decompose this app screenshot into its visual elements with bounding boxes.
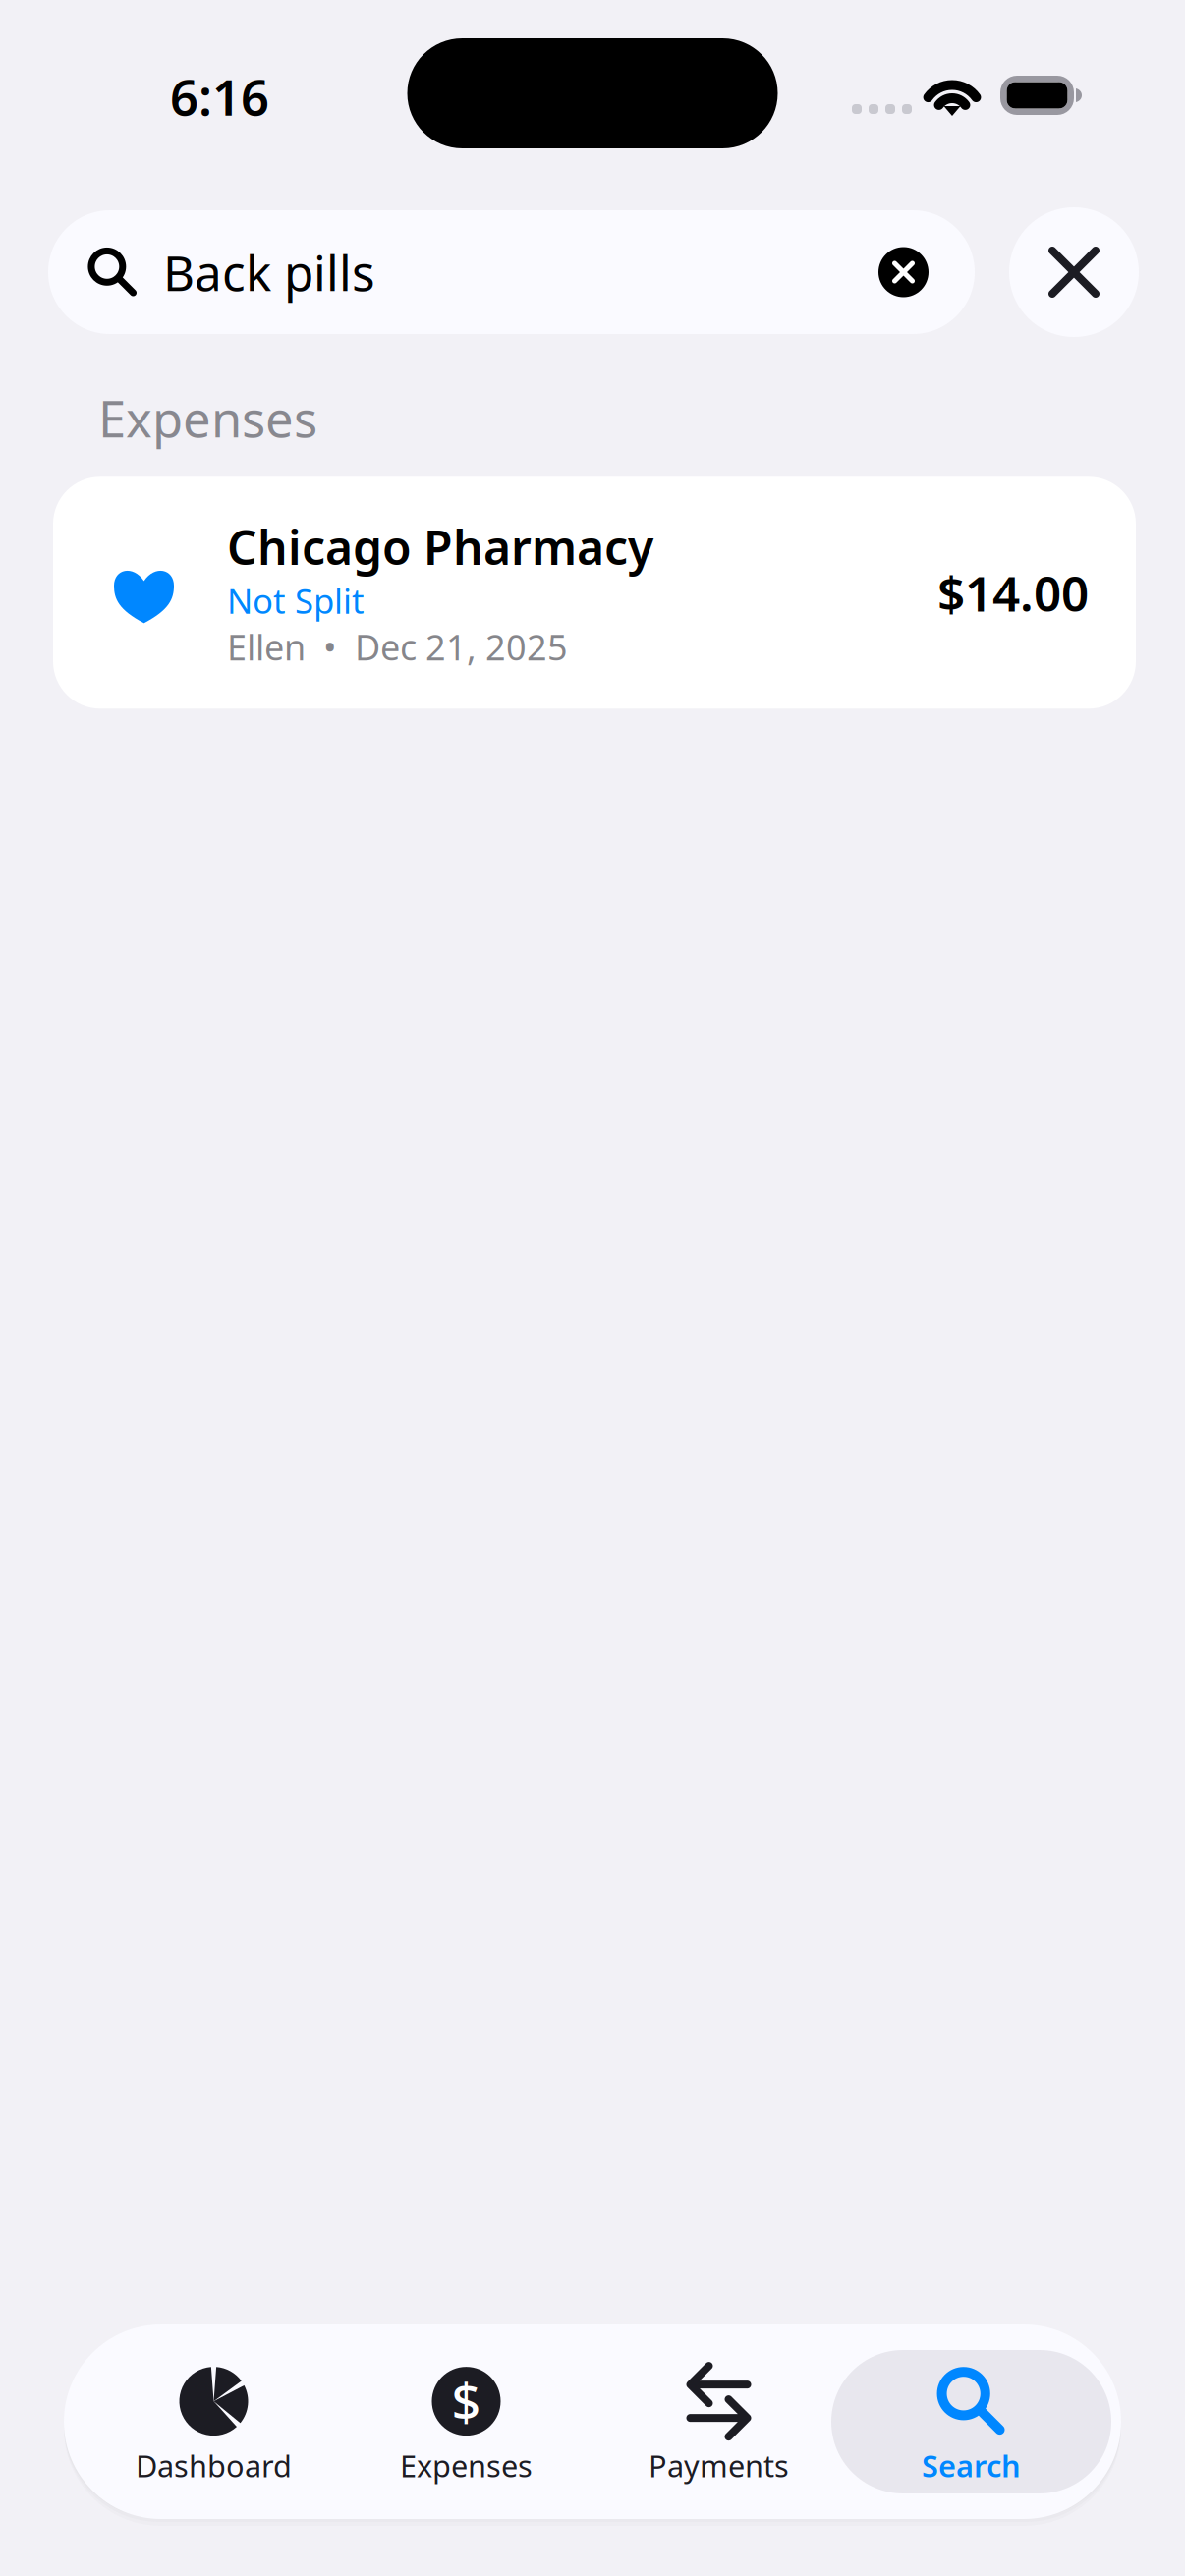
button[interactable]: $ xyxy=(340,2348,592,2495)
staticText: 6:16 xyxy=(170,63,269,129)
staticText: Chicago Pharmacy xyxy=(227,515,653,578)
staticText: $ xyxy=(451,2367,481,2435)
staticText: Not Split xyxy=(227,578,365,623)
staticText: Ellen • Dec 21, 2025 xyxy=(227,623,568,670)
button[interactable]: Payments xyxy=(592,2348,845,2495)
staticText: Expenses xyxy=(400,2445,533,2485)
staticText: Expenses xyxy=(98,385,317,451)
staticText: Payments xyxy=(649,2445,789,2485)
staticText: $14.00 xyxy=(937,560,1089,625)
button[interactable]: Dashboard xyxy=(87,2348,340,2495)
staticText: Search xyxy=(922,2445,1021,2485)
button[interactable]: Cancel search xyxy=(1009,207,1139,337)
button[interactable]: Search field, Back pills xyxy=(48,210,975,334)
staticText: Back pills xyxy=(163,240,375,304)
button[interactable]: Chicago Pharmacy xyxy=(53,477,1136,709)
button[interactable]: Search xyxy=(845,2348,1098,2495)
button[interactable]: Clear text xyxy=(878,247,929,297)
staticText: Dashboard xyxy=(136,2445,292,2485)
